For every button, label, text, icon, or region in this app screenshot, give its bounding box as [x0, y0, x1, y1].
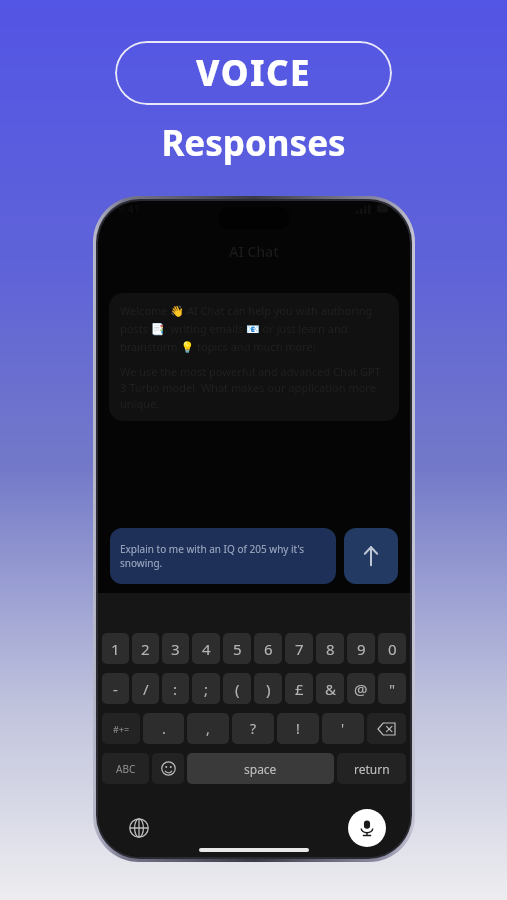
button[interactable]: Welcome 👋 AI Chat can help you with auth… — [120, 303, 388, 411]
button[interactable]: space — [187, 753, 334, 784]
staticText: ) — [266, 679, 271, 699]
staticText: - — [113, 679, 118, 699]
button[interactable]: 5 — [223, 633, 251, 664]
staticText: 2 — [141, 639, 150, 659]
button[interactable]: £ — [285, 673, 313, 704]
staticText: Welcome 👋 AI Chat can help you with auth… — [120, 303, 388, 354]
staticText: ( — [235, 679, 240, 699]
button[interactable]: Explain to me with an IQ of 205 why it's… — [110, 528, 336, 584]
button[interactable]: . — [143, 713, 184, 744]
staticText: 1 — [111, 639, 120, 659]
button[interactable]: : — [162, 673, 189, 704]
button[interactable]: 8 — [316, 633, 344, 664]
button[interactable]: 2 — [132, 633, 159, 664]
staticText: 3 — [171, 639, 180, 659]
button[interactable]: & — [316, 673, 344, 704]
staticText: 5 — [233, 639, 242, 659]
staticText: VOICE — [196, 49, 311, 97]
button[interactable]: @ — [347, 673, 375, 704]
button[interactable]: 9 — [347, 633, 375, 664]
staticText: & — [325, 679, 336, 699]
button[interactable]: ' — [322, 713, 364, 744]
staticText: AI Chat — [229, 242, 279, 261]
staticText: : — [173, 679, 178, 699]
staticText: Explain to me with an IQ of 205 why it's… — [120, 542, 326, 570]
staticText: We use the most powerful and advanced Ch… — [120, 364, 388, 411]
staticText: @ — [354, 679, 368, 699]
staticText: 7 — [295, 639, 304, 659]
button[interactable]: ABC — [102, 753, 149, 784]
button[interactable]: / — [132, 673, 159, 704]
staticText: 0 — [388, 639, 397, 659]
button[interactable]: Emoji — [152, 753, 184, 784]
staticText: 9:41 — [118, 201, 140, 216]
staticText: / — [143, 679, 149, 699]
staticText: ? — [250, 719, 257, 738]
staticText: ABC — [116, 762, 136, 776]
button[interactable]: , — [187, 713, 229, 744]
staticText: £ — [295, 679, 304, 699]
staticText: return — [354, 761, 390, 777]
staticText: Responses — [161, 119, 346, 167]
staticText: 6 — [264, 639, 273, 659]
button[interactable]: Backspace — [367, 713, 406, 744]
button[interactable]: 0 — [378, 633, 406, 664]
button[interactable]: #+= — [102, 713, 140, 744]
button[interactable]: 7 — [285, 633, 313, 664]
staticText: 9 — [357, 639, 366, 659]
staticText: , — [206, 719, 210, 738]
staticText: ! — [296, 719, 300, 738]
button[interactable]: Change keyboard language — [124, 813, 154, 843]
staticText: space — [244, 761, 277, 777]
button[interactable]: ( — [223, 673, 251, 704]
button[interactable]: ; — [192, 673, 220, 704]
staticText: 4 — [202, 639, 211, 659]
button[interactable]: VOICE — [115, 41, 392, 105]
button[interactable]: - — [102, 673, 129, 704]
staticText: . — [162, 719, 166, 738]
staticText: " — [389, 679, 396, 699]
button[interactable]: 1 — [102, 633, 129, 664]
button[interactable]: ? — [232, 713, 274, 744]
button[interactable]: " — [378, 673, 406, 704]
staticText: #+= — [113, 723, 130, 735]
button[interactable]: ! — [277, 713, 319, 744]
button[interactable]: 3 — [162, 633, 189, 664]
staticText: 8 — [326, 639, 335, 659]
staticText: ; — [204, 679, 209, 699]
button[interactable]: 4 — [192, 633, 220, 664]
staticText: ' — [341, 719, 345, 738]
button[interactable]: 6 — [254, 633, 282, 664]
button[interactable]: Voice input — [348, 809, 386, 847]
button[interactable]: return — [337, 753, 406, 784]
button[interactable]: Send — [344, 528, 398, 584]
button[interactable]: ) — [254, 673, 282, 704]
